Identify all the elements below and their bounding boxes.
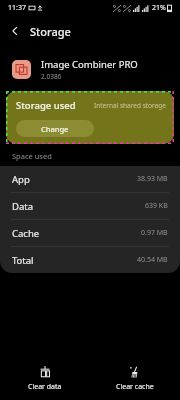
staticText: 639 KB xyxy=(145,201,168,211)
staticText: App xyxy=(12,173,30,186)
staticText: Total xyxy=(12,254,34,267)
staticText: Internal shared storage xyxy=(94,101,166,110)
staticText: Cache xyxy=(12,227,40,240)
staticText: Data xyxy=(12,200,34,213)
staticText: Storage used xyxy=(16,99,76,112)
staticText: Image Combiner PRO xyxy=(41,58,138,71)
button[interactable]: Cache xyxy=(0,220,180,246)
button[interactable]: Back xyxy=(0,16,30,46)
staticText: 2.0386 xyxy=(41,72,62,81)
staticText: 21% xyxy=(152,3,166,13)
staticText: Space used xyxy=(12,151,52,161)
button[interactable]: Image Combiner PRO xyxy=(0,54,180,84)
button[interactable]: Data xyxy=(0,193,180,219)
staticText: 40.54 MB xyxy=(137,255,168,265)
button[interactable]: Clear data xyxy=(0,361,90,396)
staticText: 0.97 MB xyxy=(141,228,168,238)
staticText: Clear data xyxy=(28,382,62,392)
staticText: Change xyxy=(41,124,69,134)
button[interactable]: Total xyxy=(0,247,180,273)
other: Clear cache xyxy=(128,365,142,379)
button[interactable]: Change xyxy=(16,120,94,137)
staticText: Storage xyxy=(30,24,71,39)
button[interactable]: App xyxy=(0,166,180,192)
button[interactable]: Storage used xyxy=(6,91,174,144)
button[interactable]: Clear cache xyxy=(90,361,180,396)
staticText: 38.93 MB xyxy=(137,174,168,184)
other: Clear data xyxy=(38,365,52,379)
staticText: 11:37 xyxy=(8,3,26,13)
staticText: Clear cache xyxy=(116,382,154,392)
